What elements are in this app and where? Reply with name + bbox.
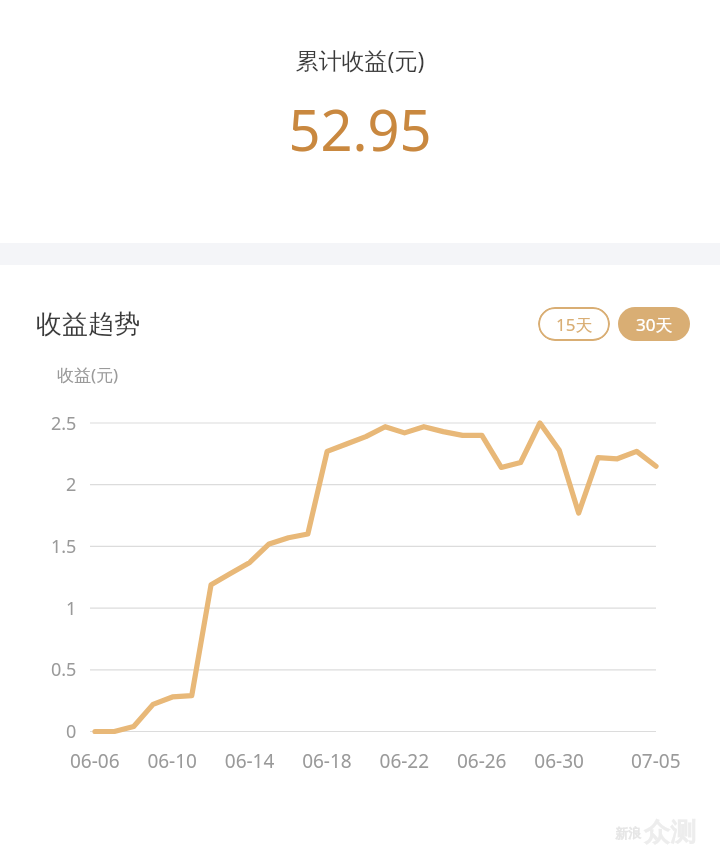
staticText: 30天: [636, 313, 673, 336]
staticText: 收益趋势: [36, 308, 140, 341]
staticText: 52.95: [0, 91, 720, 167]
button[interactable]: 30天: [618, 307, 690, 341]
staticText: 收益(元): [57, 363, 119, 386]
staticText: 众测: [644, 816, 696, 849]
button[interactable]: 15天: [538, 307, 610, 341]
staticText: 新浪: [615, 825, 641, 841]
staticText: 15天: [556, 313, 593, 336]
staticText: 累计收益(元): [0, 44, 720, 75]
